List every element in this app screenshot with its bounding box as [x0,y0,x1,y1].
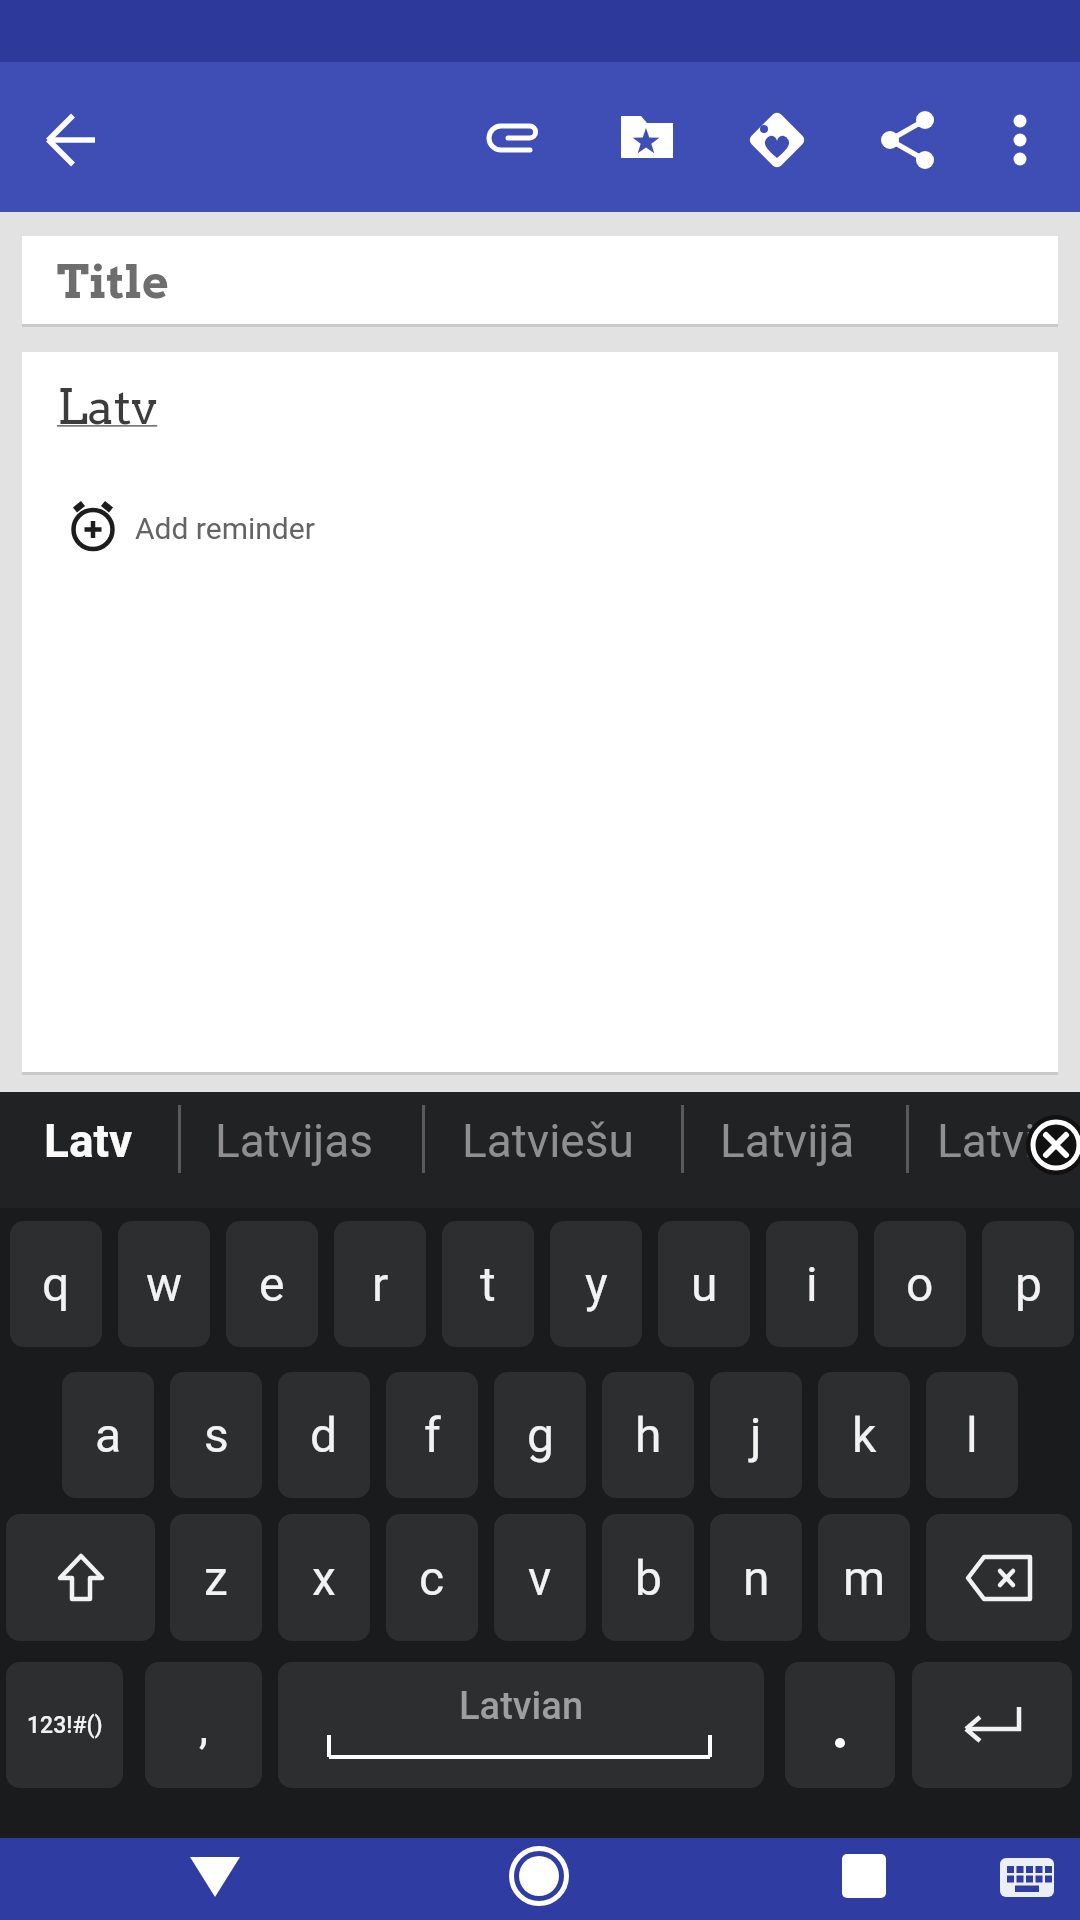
button[interactable] [609,104,681,176]
button[interactable] [491,1838,587,1920]
button[interactable]: m [818,1514,910,1641]
button[interactable] [816,1838,912,1920]
staticText: u [691,1256,718,1312]
button[interactable]: b [602,1514,694,1641]
button[interactable]: f [386,1372,478,1498]
staticText: c [419,1550,445,1606]
button[interactable]: g [494,1372,586,1498]
button[interactable] [926,1514,1072,1641]
button[interactable]: v [494,1514,586,1641]
staticText: Latvian [459,1684,584,1729]
button[interactable]: Add reminder [62,497,315,559]
staticText: m [843,1550,886,1606]
staticText: o [906,1256,934,1312]
staticText: l [966,1407,978,1463]
button[interactable]: , [145,1662,262,1788]
button[interactable]: Latvi [937,1114,1036,1168]
button[interactable]: i [766,1221,858,1347]
button[interactable]: Latv [44,1114,133,1168]
button[interactable]: a [62,1372,154,1498]
button[interactable]: r [334,1221,426,1347]
button[interactable]: Latvijas [215,1114,374,1168]
staticText: w [146,1256,183,1312]
button[interactable] [37,104,109,176]
staticText: d [310,1407,338,1463]
button[interactable]: o [874,1221,966,1347]
staticText: a [95,1407,122,1463]
button[interactable] [984,104,1056,176]
staticText: Title [57,254,169,310]
button[interactable]: s [170,1372,262,1498]
button[interactable]: 123!#() [6,1662,123,1788]
button[interactable] [994,1838,1060,1920]
button[interactable] [6,1514,155,1641]
staticText: x [312,1550,336,1606]
button[interactable]: k [818,1372,910,1498]
button[interactable]: z [170,1514,262,1641]
staticText: , [199,1700,209,1754]
button[interactable] [1020,1108,1080,1172]
staticText: j [750,1407,762,1463]
button[interactable]: Title [22,236,1058,324]
button[interactable] [912,1662,1072,1788]
button[interactable] [167,1838,263,1920]
button[interactable]: d [278,1372,370,1498]
button[interactable]: Latviešu [462,1114,634,1168]
button[interactable]: q [10,1221,102,1347]
staticText: k [852,1407,877,1463]
button[interactable] [741,104,813,176]
staticText: b [635,1550,662,1606]
staticText: h [635,1407,662,1463]
staticText: q [42,1256,70,1312]
staticText: v [528,1550,552,1606]
button[interactable]: u [658,1221,750,1347]
button[interactable]: c [386,1514,478,1641]
button[interactable] [872,104,944,176]
staticText: z [204,1550,228,1606]
staticText: f [424,1407,441,1463]
button[interactable]: h [602,1372,694,1498]
staticText: i [806,1256,818,1312]
staticText: g [527,1407,554,1463]
staticText: Add reminder [135,511,315,546]
button[interactable]: n [710,1514,802,1641]
button[interactable]: l [926,1372,1018,1498]
button[interactable]: p [982,1221,1074,1347]
button[interactable] [480,104,552,176]
staticText: y [585,1256,608,1312]
staticText: e [259,1256,285,1312]
staticText: p [1015,1256,1042,1312]
button[interactable]: y [550,1221,642,1347]
button[interactable]: x [278,1514,370,1641]
staticText: t [480,1256,496,1312]
button[interactable]: e [226,1221,318,1347]
staticText: 123!#() [27,1712,103,1739]
staticText: Latv [57,378,158,436]
staticText: s [204,1407,229,1463]
button[interactable]: Latvian [278,1662,764,1788]
staticText: r [372,1256,389,1312]
button[interactable]: t [442,1221,534,1347]
button[interactable] [785,1662,895,1788]
button[interactable]: w [118,1221,210,1347]
button[interactable]: Latvijā [720,1114,855,1168]
staticText: n [743,1550,770,1606]
button[interactable]: j [710,1372,802,1498]
